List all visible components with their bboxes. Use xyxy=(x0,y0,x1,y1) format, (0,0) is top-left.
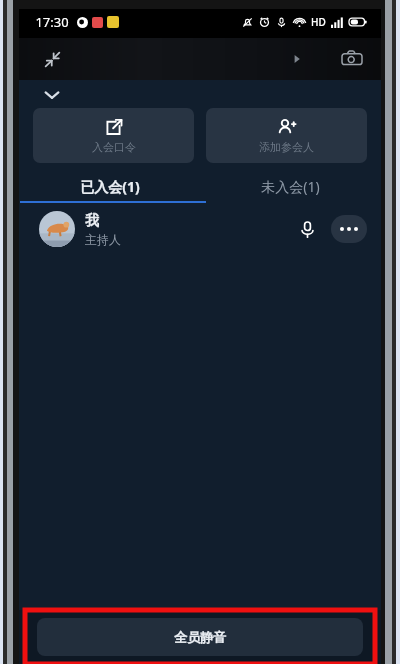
button[interactable]: 已入会(1) xyxy=(19,171,200,201)
button[interactable]: 未入会(1) xyxy=(200,171,381,201)
button[interactable]: 我 xyxy=(19,203,381,255)
staticText: 已入会(1) xyxy=(80,177,140,196)
button[interactable]: 添加参会人 xyxy=(206,108,367,163)
button[interactable]: More options xyxy=(331,215,367,243)
staticText: 入会口令 xyxy=(92,140,136,154)
staticText: 主持人 xyxy=(85,232,121,247)
button[interactable]: Collapse xyxy=(37,44,67,74)
button[interactable]: 全员静音 xyxy=(37,618,363,656)
button[interactable]: Play xyxy=(287,49,307,69)
button[interactable]: Mute participant xyxy=(291,213,323,245)
button[interactable]: 入会口令 xyxy=(33,108,194,163)
button[interactable]: Collapse panel xyxy=(37,82,67,108)
staticText: 未入会(1) xyxy=(261,177,320,196)
staticText: 添加参会人 xyxy=(259,140,314,154)
staticText: HD xyxy=(311,15,326,29)
button[interactable]: Camera xyxy=(337,44,367,74)
staticText: 17:30 xyxy=(35,13,69,31)
staticText: 我 xyxy=(85,212,99,230)
staticText: 全员静音 xyxy=(174,629,226,645)
